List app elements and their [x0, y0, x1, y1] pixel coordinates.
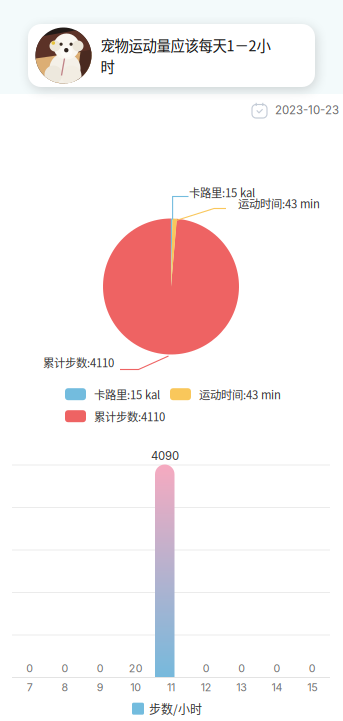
staticText: 累计步数:4110 [43, 354, 114, 370]
staticText: 12 [201, 681, 212, 694]
staticText: 步数/小时 [149, 700, 202, 717]
staticText: 运动时间:43 min [238, 195, 320, 211]
staticText: 0 [26, 662, 33, 675]
staticText: 4090 [151, 449, 179, 463]
staticText: 0 [61, 662, 68, 675]
staticText: 0 [238, 662, 245, 675]
button[interactable]: 2023-10-23 [252, 102, 339, 118]
staticText: 宠物运动量应该每天1－2小时 [100, 35, 270, 76]
staticText: 10 [130, 681, 141, 694]
staticText: 0 [273, 662, 280, 675]
staticText: 11 [167, 681, 175, 694]
staticText: 0 [97, 662, 104, 675]
staticText: 20 [129, 662, 143, 675]
staticText: 运动时间:43 min [199, 386, 281, 402]
staticText: 8 [61, 681, 68, 694]
staticText: 0 [203, 662, 210, 675]
staticText: 卡路里:15 kal [94, 386, 160, 402]
button[interactable]: 宠物运动量应该每天1－2小时 [28, 24, 315, 87]
staticText: 14 [271, 681, 282, 694]
staticText: 0 [309, 662, 316, 675]
staticText: 卡路里:15 kal [189, 184, 255, 200]
staticText: 累计步数:4110 [94, 408, 165, 424]
staticText: 9 [97, 681, 104, 694]
staticText: 15 [307, 681, 317, 694]
staticText: 2023-10-23 [275, 103, 339, 117]
staticText: 7 [27, 681, 33, 694]
staticText: 13 [236, 681, 247, 694]
